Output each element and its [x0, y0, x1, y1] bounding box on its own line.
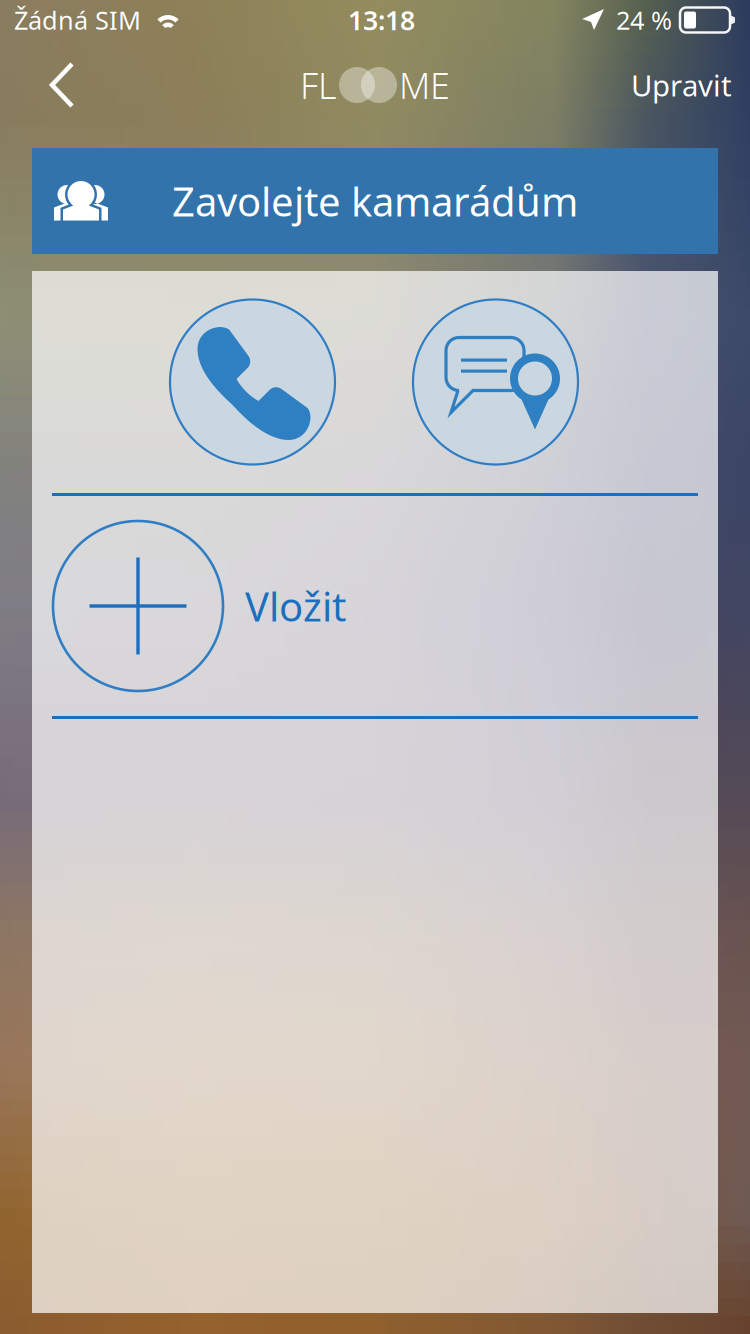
staticText: ME: [399, 61, 450, 109]
staticText: FL: [300, 61, 337, 109]
button[interactable]: Zprávy a poloha: [413, 299, 578, 464]
button[interactable]: Vložit: [32, 496, 718, 716]
button[interactable]: Zavolat: [170, 299, 335, 464]
button[interactable]: Zavolejte kamarádům: [32, 148, 718, 254]
staticText: Upravit: [631, 65, 732, 104]
staticText: 13:18: [348, 2, 415, 38]
button[interactable]: Upravit: [611, 40, 732, 130]
button[interactable]: Zpět: [34, 40, 90, 130]
staticText: 24 %: [616, 3, 672, 37]
staticText: Vložit: [245, 579, 346, 632]
staticText: Žádná SIM: [14, 3, 141, 37]
staticText: Zavolejte kamarádům: [172, 174, 578, 227]
